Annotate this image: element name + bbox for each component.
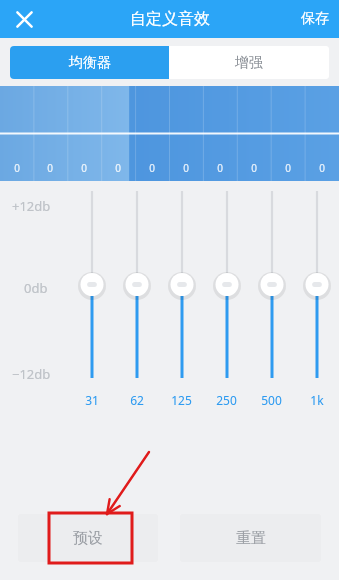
staticText: 预设 xyxy=(73,529,103,548)
staticText: 0 xyxy=(319,161,325,175)
button[interactable]: 62 xyxy=(114,181,159,408)
staticText: 0 xyxy=(14,161,20,175)
button[interactable]: 保存 xyxy=(291,4,339,34)
button[interactable]: 增强 xyxy=(169,46,329,79)
button[interactable]: 500 xyxy=(249,181,294,408)
staticText: 0db xyxy=(24,279,48,297)
staticText: 0 xyxy=(285,161,291,175)
staticText: 62 xyxy=(130,392,144,408)
staticText: 0 xyxy=(217,161,223,175)
staticText: 保存 xyxy=(301,10,329,28)
staticText: 0 xyxy=(183,161,189,175)
button[interactable]: 预设 xyxy=(18,514,158,562)
button[interactable]: 均衡器 xyxy=(10,46,169,79)
staticText: 125 xyxy=(171,392,192,408)
staticText: 250 xyxy=(216,392,237,408)
button[interactable]: 250 xyxy=(204,181,249,408)
staticText: 0 xyxy=(251,161,257,175)
staticText: 500 xyxy=(261,392,282,408)
staticText: 增强 xyxy=(235,54,263,72)
button[interactable]: 1k xyxy=(294,181,339,408)
button[interactable]: Close xyxy=(8,3,40,35)
staticText: 重置 xyxy=(236,529,266,548)
staticText: 31 xyxy=(85,392,99,408)
button[interactable]: 重置 xyxy=(180,514,321,562)
staticText: 0 xyxy=(47,161,53,175)
staticText: +12db xyxy=(12,197,51,215)
staticText: 0 xyxy=(149,161,155,175)
staticText: 1k xyxy=(310,392,324,408)
button[interactable]: 31 xyxy=(70,181,114,408)
button[interactable]: 125 xyxy=(159,181,204,408)
staticText: −12db xyxy=(12,365,51,383)
staticText: 自定义音效 xyxy=(130,9,210,29)
staticText: 0 xyxy=(115,161,121,175)
staticText: 0 xyxy=(81,161,87,175)
staticText: 均衡器 xyxy=(69,54,111,72)
